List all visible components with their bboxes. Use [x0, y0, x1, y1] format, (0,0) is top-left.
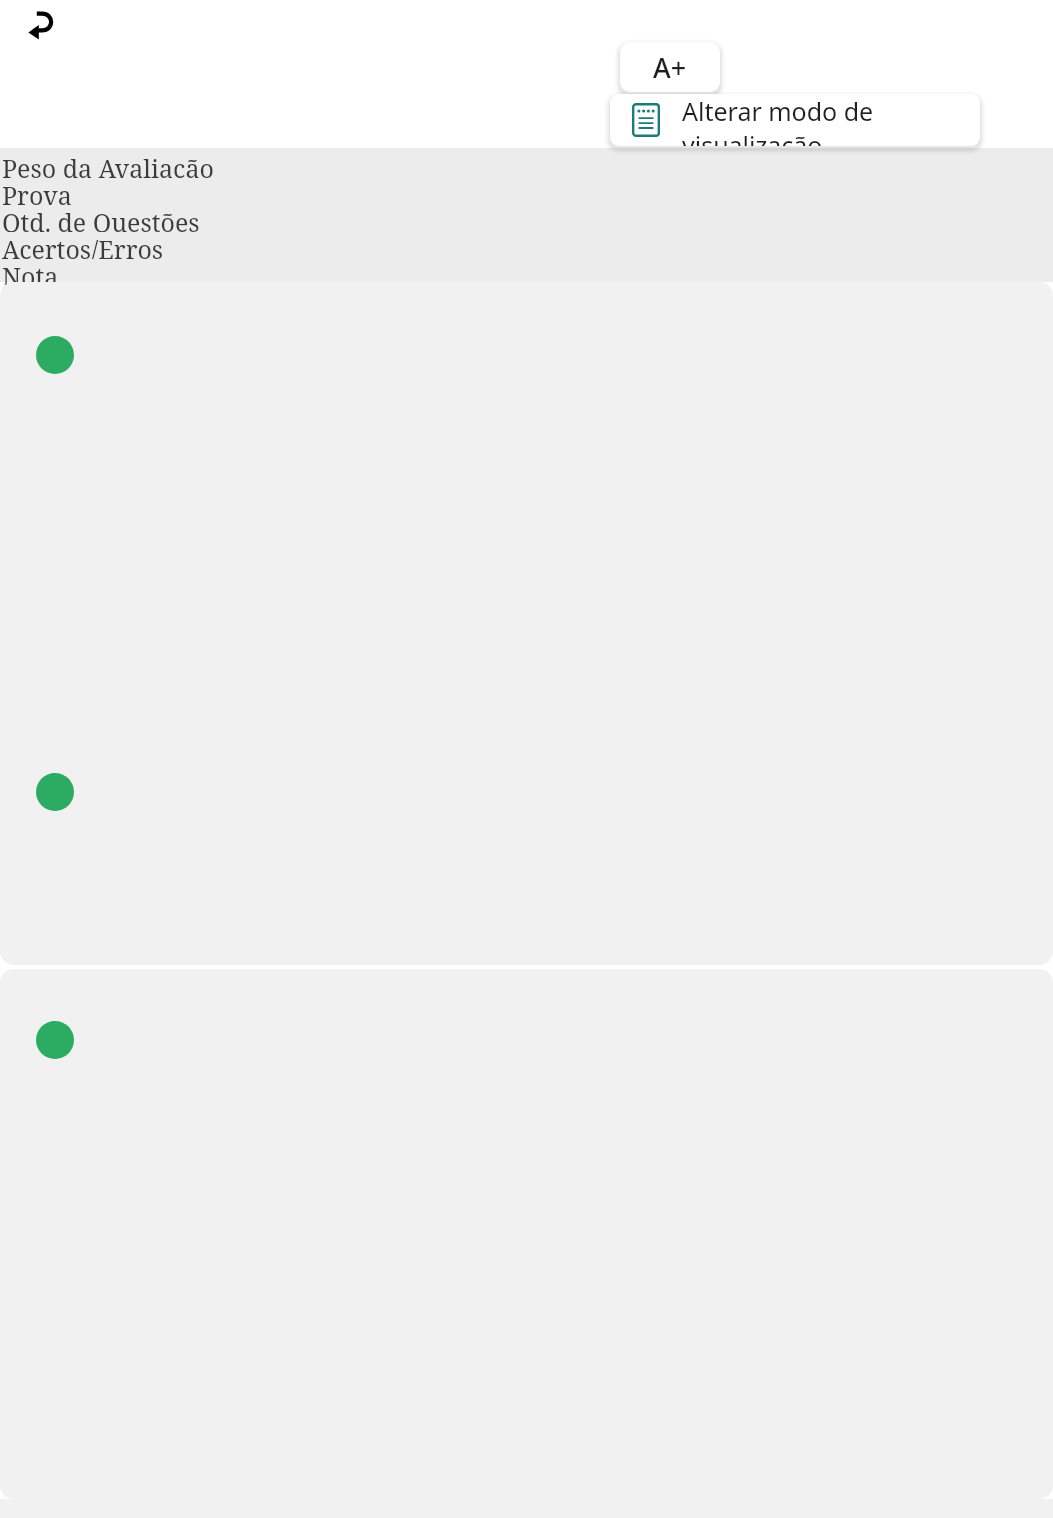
button[interactable]: Voltar [8, 0, 80, 64]
staticText: Prova [2, 178, 72, 205]
button[interactable]: Alterar modo de visualização [610, 94, 980, 146]
staticText: Alterar modo de visualização [682, 94, 980, 146]
button[interactable]: A+ [620, 42, 720, 92]
staticText: Peso da Avaliação [2, 151, 214, 178]
staticText: Nota [2, 259, 59, 285]
button[interactable] [0, 282, 1053, 965]
staticText: Acertos/Erros [2, 232, 164, 259]
staticText: Qtd. de Questões [2, 205, 200, 232]
staticText: A+ [653, 49, 687, 86]
button[interactable] [0, 969, 1053, 1499]
